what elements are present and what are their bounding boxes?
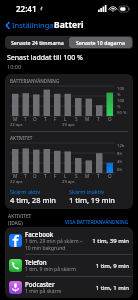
staticText: M [85, 116, 90, 122]
staticText: 22 apr. [10, 122, 62, 128]
button[interactable]: Inställningar [4, 18, 59, 32]
staticText: 100 % [117, 98, 128, 110]
staticText: F [54, 116, 57, 122]
staticText: Telefon [25, 258, 47, 266]
staticText: 8h [117, 151, 122, 157]
staticText: Senaste 24 timmarna [11, 39, 64, 46]
staticText: O [108, 116, 112, 122]
staticText: 1 tim, 29 min på skärm – 10 min bakgrund [25, 238, 83, 251]
staticText: S [75, 173, 78, 179]
staticText: 1 tim, 9 min på skärm [25, 266, 76, 273]
staticText: AKTIVITET [10, 135, 33, 141]
staticText: 1 tim, 9 min [95, 262, 129, 270]
staticText: 1 tim, 19 min [69, 195, 115, 205]
staticText: Skärm aktiv [10, 188, 41, 195]
staticText: BATTERIANVÄNDNING [10, 78, 60, 84]
staticText: O [33, 116, 37, 122]
staticText: 22:41 [16, 3, 37, 14]
staticText: M [13, 173, 18, 179]
staticText: T [97, 116, 100, 122]
staticText: 29 apr. [62, 122, 115, 128]
staticText: 100 % [117, 86, 128, 98]
staticText: Skärm inaktiv [69, 188, 104, 195]
staticText: 50 % [117, 110, 127, 116]
button[interactable]: Telefon [5, 255, 133, 276]
staticText: Facebook [25, 230, 54, 238]
staticText: T [24, 173, 27, 179]
staticText: O [33, 173, 37, 179]
staticText: M [85, 173, 90, 179]
staticText: Inställningar [12, 20, 57, 30]
staticText: 22 apr. [10, 179, 62, 185]
staticText: M [13, 116, 18, 122]
staticText: T [24, 116, 27, 122]
button[interactable]: Podcaster [5, 277, 133, 298]
staticText: T [44, 173, 47, 179]
staticText: T [97, 173, 100, 179]
staticText: 0h [117, 167, 122, 173]
staticText: 12h [117, 143, 125, 149]
staticText: Podcaster [25, 280, 55, 288]
other: Telefon [9, 259, 22, 272]
staticText: AKTIVITET [8, 213, 32, 220]
button[interactable]: Senaste 10 dagarna [69, 37, 132, 48]
staticText: 1 min på skärm [25, 288, 62, 295]
staticText: O [108, 173, 112, 179]
button[interactable]: Facebook [5, 227, 133, 254]
staticText: 1 tim, 39 min [92, 237, 129, 245]
staticText: F [54, 173, 57, 179]
staticText: 1 tim, 1 min [95, 284, 129, 292]
staticText: Batteri [54, 19, 84, 31]
staticText: (IDAG) [8, 220, 23, 227]
staticText: Senast laddat till 100 % [7, 53, 83, 63]
staticText: 4h [117, 159, 122, 165]
staticText: VISA BATTERIANVÄNDNING [65, 219, 129, 226]
staticText: 4 tim, 28 min [10, 195, 56, 205]
staticText: 10:00 [7, 63, 22, 70]
staticText: Senaste 10 dagarna [76, 39, 125, 46]
staticText: T [44, 116, 47, 122]
staticText: L [64, 173, 67, 179]
button[interactable]: Senaste 24 timmarna [6, 37, 69, 48]
staticText: 29 apr. [62, 179, 115, 185]
staticText: S [75, 116, 78, 122]
other: Podcaster [9, 281, 22, 294]
button[interactable]: VISA BATTERIANVÄNDNING [64, 218, 130, 227]
staticText: L [64, 116, 67, 122]
other: Facebook [9, 234, 22, 247]
